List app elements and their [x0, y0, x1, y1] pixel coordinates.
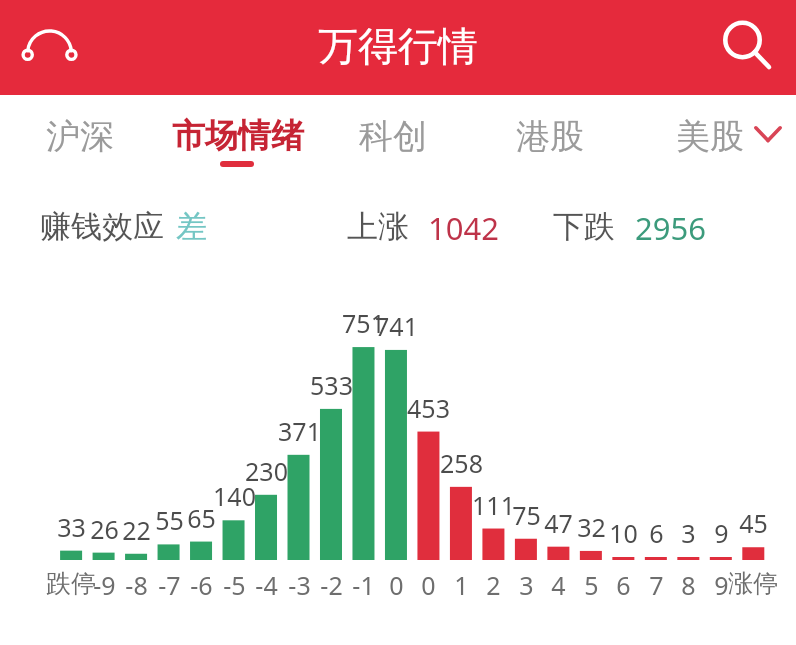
button[interactable]: Listen	[6, 14, 74, 82]
staticText: 市场情绪	[172, 115, 304, 157]
staticText: 下跌	[553, 207, 615, 246]
staticText: 47	[544, 506, 573, 540]
staticText: 6	[649, 516, 664, 550]
button[interactable]: 科创	[343, 106, 411, 162]
staticText: 45	[739, 506, 768, 540]
staticText: 3	[681, 516, 696, 550]
staticText: 32	[577, 510, 606, 544]
staticText: 453	[407, 391, 450, 425]
staticText: 美股	[676, 115, 744, 158]
staticText: 75	[512, 498, 541, 532]
staticText: 港股	[516, 115, 584, 158]
staticText: 1	[454, 568, 469, 602]
staticText: -4	[255, 568, 278, 602]
staticText: 533	[310, 368, 353, 402]
button[interactable]: 下跌	[541, 186, 725, 248]
staticText: -1	[352, 568, 375, 602]
staticText: -6	[190, 568, 213, 602]
staticText: 沪深	[46, 115, 114, 158]
button[interactable]: 市场情绪	[156, 106, 288, 162]
staticText: 上涨	[347, 207, 409, 246]
button[interactable]: 赚钱效应	[28, 186, 328, 248]
button[interactable]: 上涨	[335, 186, 521, 248]
staticText: 22	[122, 513, 151, 547]
staticText: -9	[93, 568, 116, 602]
staticText: 65	[187, 501, 216, 535]
staticText: 赚钱效应	[40, 207, 164, 246]
staticText: 涨停	[728, 568, 778, 599]
staticText: 万得行情	[318, 21, 478, 71]
staticText: 55	[155, 503, 184, 537]
staticText: 26	[90, 512, 119, 546]
staticText: 3	[519, 568, 534, 602]
button[interactable]: More markets	[744, 108, 792, 156]
staticText: 33	[57, 510, 86, 544]
staticText: 2956	[635, 207, 706, 249]
staticText: 751	[342, 306, 385, 340]
staticText: 0	[389, 568, 404, 602]
staticText: 371	[278, 414, 321, 448]
staticText: 258	[440, 446, 483, 480]
staticText: 9	[714, 568, 729, 602]
staticText: -3	[288, 568, 311, 602]
staticText: 跌停	[46, 568, 96, 599]
staticText: -7	[158, 568, 181, 602]
staticText: 1042	[428, 207, 499, 249]
button[interactable]: Search	[710, 6, 786, 82]
staticText: 5	[584, 568, 599, 602]
staticText: 2	[486, 568, 501, 602]
staticText: 7	[649, 568, 664, 602]
staticText: -2	[320, 568, 343, 602]
staticText: 230	[245, 454, 288, 488]
staticText: 6	[616, 568, 631, 602]
staticText: 4	[551, 568, 566, 602]
staticText: 140	[213, 479, 256, 513]
staticText: 8	[681, 568, 696, 602]
staticText: 111	[472, 488, 515, 522]
staticText: 10	[609, 516, 638, 550]
button[interactable]: 美股	[660, 106, 728, 162]
button[interactable]: Market sentiment distribution chart	[40, 290, 780, 590]
staticText: 差	[176, 207, 207, 246]
staticText: 9	[714, 516, 729, 550]
button[interactable]: 沪深	[30, 106, 98, 162]
staticText: -5	[223, 568, 246, 602]
staticText: 741	[375, 309, 418, 343]
button[interactable]: 港股	[500, 106, 568, 162]
staticText: -8	[125, 568, 148, 602]
staticText: 科创	[359, 115, 427, 158]
staticText: 0	[421, 568, 436, 602]
